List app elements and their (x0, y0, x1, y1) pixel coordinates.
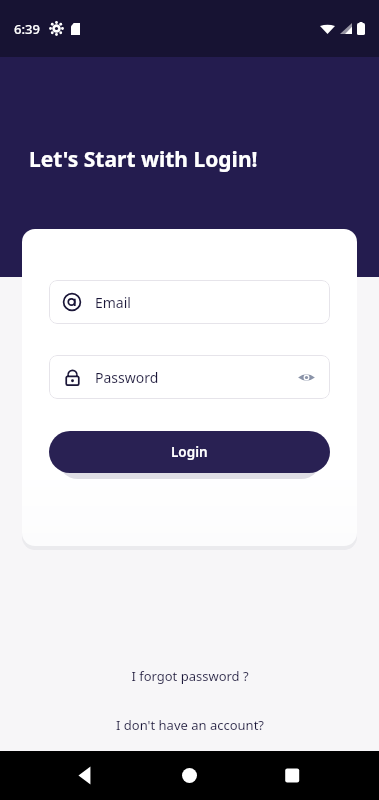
button[interactable]: Login (49, 431, 330, 473)
button[interactable]: Password (49, 355, 330, 399)
staticText: Email (95, 293, 131, 312)
button[interactable]: I forgot password ? (123, 664, 257, 688)
staticText: 6:39 (14, 20, 40, 38)
button[interactable]: I don't have an account? (108, 713, 272, 737)
staticText: I don't have an account? (116, 716, 264, 734)
staticText: Password (95, 368, 159, 387)
button[interactable]: Email (49, 280, 330, 324)
staticText: Login (171, 443, 208, 461)
button[interactable]: Show password (294, 365, 318, 389)
staticText: I forgot password ? (131, 667, 249, 685)
staticText: Let's Start with Login! (29, 145, 258, 174)
